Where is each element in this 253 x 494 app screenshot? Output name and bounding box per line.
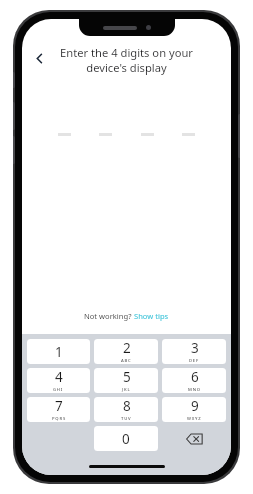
button[interactable]: 6 [162, 368, 226, 393]
staticText: TUV [121, 416, 132, 422]
button[interactable]: 8 [94, 397, 158, 422]
staticText: Show tips [134, 311, 169, 321]
staticText: Enter the 4 digits on your device's disp… [48, 45, 205, 75]
button[interactable]: 0 [94, 426, 158, 451]
button[interactable]: Delete [162, 426, 226, 451]
staticText: 0 [122, 430, 130, 448]
staticText: PQRS [52, 416, 66, 422]
button[interactable]: Show tips [134, 311, 169, 321]
button[interactable]: 1 [27, 339, 90, 364]
staticText: DEF [189, 358, 200, 364]
staticText: 2 [123, 339, 131, 357]
button[interactable]: 5 [94, 368, 158, 393]
button[interactable]: Back [29, 48, 49, 68]
button[interactable]: 3 [162, 339, 226, 364]
staticText: GHI [53, 387, 64, 393]
staticText: 6 [191, 368, 199, 386]
staticText: 8 [123, 397, 131, 415]
button[interactable]: 2 [94, 339, 158, 364]
staticText: 3 [191, 339, 199, 357]
staticText: JKL [122, 387, 131, 393]
staticText: WXYZ [187, 416, 202, 422]
staticText: 7 [55, 397, 63, 415]
staticText: 4 [55, 368, 63, 386]
button[interactable]: 9 [162, 397, 226, 422]
staticText: 9 [191, 397, 199, 415]
staticText: Not working? [84, 311, 134, 321]
staticText: 5 [123, 368, 131, 386]
button[interactable]: 4 [27, 368, 90, 393]
staticText: MNO [188, 387, 201, 393]
staticText: 1 [55, 343, 63, 361]
button[interactable]: 7 [27, 397, 90, 422]
staticText: ABC [121, 358, 132, 364]
